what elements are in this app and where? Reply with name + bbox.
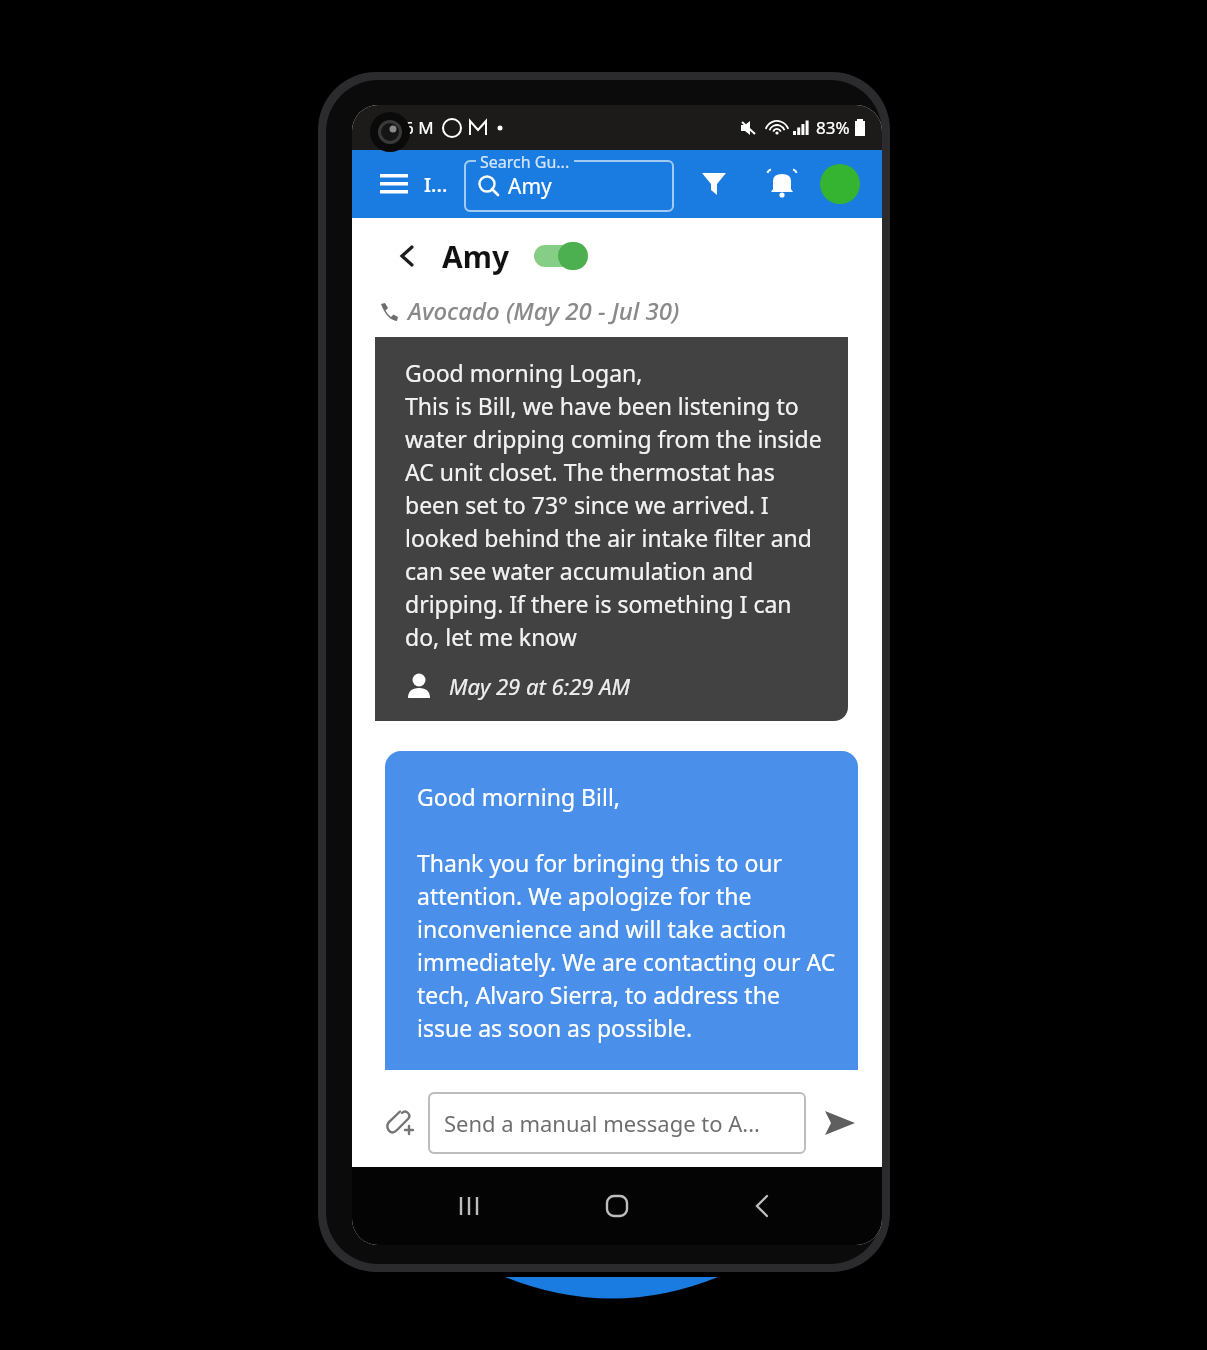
staticText: Good morning Logan, This is Bill, we hav…: [405, 357, 828, 653]
staticText: Send a manual message to A...: [444, 1108, 761, 1138]
button[interactable]: Menu: [372, 162, 416, 206]
button[interactable]: Back: [386, 234, 430, 278]
staticText: 83%: [816, 116, 850, 139]
button[interactable]: Send: [816, 1099, 864, 1147]
button[interactable]: Attach file: [376, 1099, 424, 1147]
button[interactable]: Filter: [692, 162, 736, 206]
staticText: May 29 at 6:29 AM: [449, 671, 631, 701]
staticText: Avocado (May 20 - Jul 30): [408, 294, 680, 327]
button[interactable]: Profile: [820, 164, 860, 204]
button[interactable]: Notifications: [760, 162, 804, 206]
button[interactable]: Toggle active: [532, 242, 590, 270]
staticText: Good morning Bill, Thank you for bringin…: [417, 781, 838, 1044]
button[interactable]: [464, 160, 674, 212]
staticText: Search Gu...: [480, 151, 570, 173]
button[interactable]: Send a manual message to A...: [428, 1092, 806, 1154]
button[interactable]: Recents: [444, 1179, 498, 1233]
staticText: Amy: [508, 172, 552, 201]
button[interactable]: Good morning Logan, This is Bill, we hav…: [375, 337, 848, 721]
button[interactable]: Back: [736, 1179, 790, 1233]
staticText: 6 M: [404, 116, 434, 139]
button[interactable]: Good morning Bill, Thank you for bringin…: [385, 751, 858, 1070]
staticText: Amy: [442, 236, 510, 277]
button[interactable]: Home: [590, 1179, 644, 1233]
staticText: I...: [424, 171, 448, 198]
